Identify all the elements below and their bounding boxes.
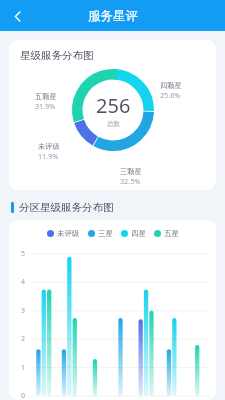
- staticText: 32.5%: [120, 176, 141, 186]
- staticText: 五颗星: [35, 92, 57, 101]
- staticText: 总数: [107, 120, 120, 128]
- staticText: 四星: [131, 229, 146, 238]
- staticText: 25.6%: [160, 90, 181, 100]
- staticText: 三颗星: [120, 167, 142, 176]
- button[interactable]: 未评级: [47, 229, 80, 238]
- staticText: 五星: [164, 229, 179, 238]
- button[interactable]: Back: [5, 4, 29, 28]
- staticText: 未评级: [38, 142, 60, 151]
- staticText: 3: [21, 306, 26, 316]
- staticText: 11.9%: [38, 151, 59, 161]
- staticText: 星级服务分布图: [20, 49, 94, 62]
- button[interactable]: 三星: [88, 229, 113, 238]
- button[interactable]: 四星: [121, 229, 146, 238]
- staticText: 4: [21, 277, 26, 287]
- staticText: 四颗星: [160, 81, 182, 90]
- staticText: 256: [96, 92, 131, 119]
- staticText: 未评级: [57, 229, 80, 238]
- staticText: 2: [21, 334, 26, 344]
- staticText: 1: [21, 363, 26, 373]
- staticText: 0: [21, 391, 26, 400]
- staticText: 31.9%: [35, 101, 56, 111]
- staticText: 分区星级服务分布图: [19, 201, 114, 214]
- staticText: 三星: [98, 229, 113, 238]
- staticText: 服务星评: [88, 8, 138, 24]
- staticText: 5: [21, 249, 26, 259]
- button[interactable]: 五星: [154, 229, 179, 238]
